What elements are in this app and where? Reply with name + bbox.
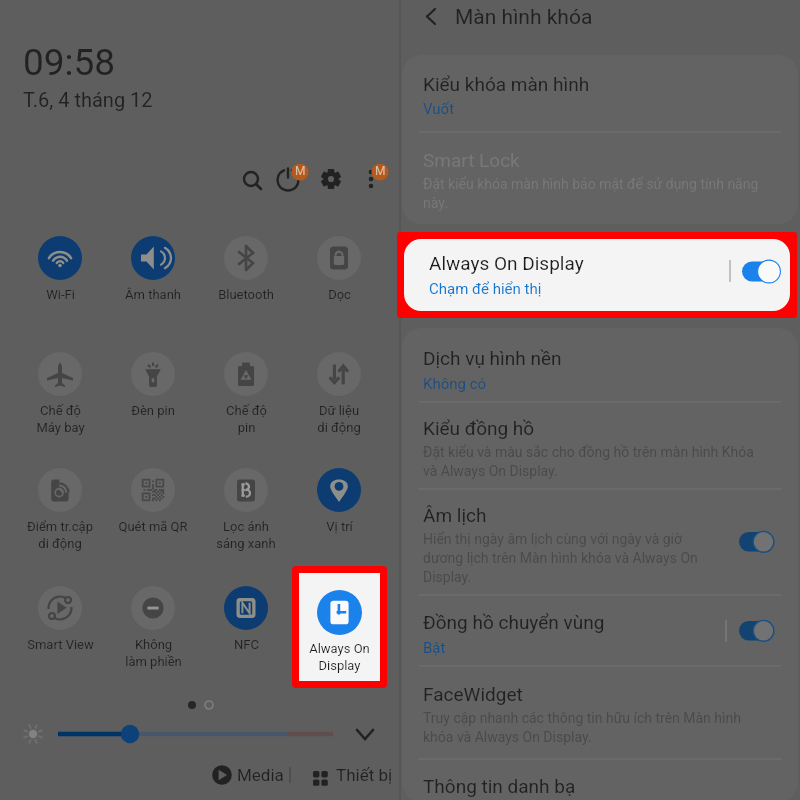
staticText: Âm thanh xyxy=(125,287,181,302)
staticText: Màn hình khóa xyxy=(455,5,593,30)
staticText: Đặt kiểu và màu sắc cho đồng hồ trên màn… xyxy=(423,444,754,479)
button[interactable]: Chế độ pin xyxy=(200,351,292,421)
staticText: T.6, 4 tháng 12 xyxy=(23,88,153,111)
staticText: Smart View xyxy=(27,637,94,652)
staticText: Quét mã QR xyxy=(118,519,188,534)
button[interactable]: Âm thanh xyxy=(107,235,199,305)
staticText: FaceWidget xyxy=(423,683,523,705)
staticText: Dọc xyxy=(328,287,351,302)
button[interactable]: Dịch vụ hình nền xyxy=(402,332,798,402)
button[interactable]: Chế độ Máy bay xyxy=(14,351,106,421)
button[interactable]: Smart Lock xyxy=(402,133,798,222)
button[interactable]: Lọc ánh sáng xanh xyxy=(200,467,292,537)
staticText: Thông tin danh bạ xyxy=(423,775,576,797)
staticText: Điểm tr.cập di động xyxy=(27,519,93,552)
staticText: Vị trí xyxy=(326,519,353,534)
button[interactable]: Điểm tr.cập di động xyxy=(14,467,106,537)
button[interactable]: Kiểu khóa màn hình xyxy=(402,56,798,132)
staticText: M xyxy=(295,164,306,178)
staticText: Lọc ánh sáng xanh xyxy=(216,519,276,552)
staticText: Always On Display xyxy=(309,641,370,674)
button[interactable]: Dọc xyxy=(293,235,385,305)
staticText: Bật xyxy=(423,639,446,657)
button[interactable]: Đèn pin xyxy=(107,351,199,421)
staticText: Chế độ Máy bay xyxy=(36,403,85,436)
button[interactable]: Wi-Fi xyxy=(14,235,106,305)
button[interactable]: Always On Display xyxy=(404,239,790,311)
button[interactable]: Bluetooth xyxy=(200,235,292,305)
button[interactable]: FaceWidget xyxy=(402,667,798,759)
staticText: Hiển thị ngày âm lịch cùng với ngày và g… xyxy=(423,531,698,585)
staticText: NFC xyxy=(234,637,259,652)
staticText: Truy cập nhanh các thông tin hữu ích trê… xyxy=(423,710,741,745)
staticText: Bluetooth xyxy=(218,287,274,302)
button[interactable]: Đồng hồ chuyển vùng xyxy=(402,596,798,666)
button[interactable]: Kiểu đồng hồ xyxy=(402,403,798,489)
staticText: Chạm để hiển thị xyxy=(429,280,542,298)
button[interactable]: Thông tin danh bạ xyxy=(402,760,798,800)
staticText: Kiểu đồng hồ xyxy=(423,417,535,439)
button[interactable]: Always On Display xyxy=(299,573,380,681)
staticText: Media xyxy=(237,765,284,785)
staticText: Kiểu khóa màn hình xyxy=(423,73,590,95)
button[interactable]: Back xyxy=(418,0,452,34)
staticText: Âm lịch xyxy=(423,504,487,526)
button[interactable]: Vị trí xyxy=(293,467,385,537)
button[interactable]: Media xyxy=(210,761,282,790)
staticText: Không có xyxy=(423,375,487,393)
button[interactable]: Thiết bị xyxy=(308,761,396,790)
button[interactable]: Smart View xyxy=(14,585,106,655)
button[interactable]: More options xyxy=(357,164,389,196)
button[interactable]: Search xyxy=(236,164,268,196)
button[interactable]: NFC xyxy=(200,585,292,655)
staticText: Không làm phiền xyxy=(125,637,182,670)
staticText: Chế độ pin xyxy=(226,403,267,436)
staticText: 09:58 xyxy=(23,41,116,84)
staticText: Wi-Fi xyxy=(46,287,75,302)
staticText: Vuốt xyxy=(423,100,455,118)
staticText: Đồng hồ chuyển vùng xyxy=(423,611,605,633)
staticText: Always On Display xyxy=(429,252,584,274)
button[interactable]: Âm lịch xyxy=(402,490,798,595)
staticText: Thiết bị xyxy=(336,765,393,785)
button[interactable]: Quét mã QR xyxy=(107,467,199,537)
staticText: Dữ liệu di động xyxy=(317,403,361,436)
staticText: Dịch vụ hình nền xyxy=(423,347,562,369)
staticText: Đặt kiểu khóa màn hình bảo mật để sử dụn… xyxy=(423,176,759,211)
button[interactable]: Power xyxy=(273,164,305,196)
staticText: Đèn pin xyxy=(131,403,175,418)
staticText: Smart Lock xyxy=(423,149,520,171)
button[interactable]: Không làm phiền xyxy=(107,585,199,655)
button[interactable]: Dữ liệu di động xyxy=(293,351,385,421)
staticText: M xyxy=(375,164,386,178)
button[interactable]: Settings xyxy=(316,164,348,196)
